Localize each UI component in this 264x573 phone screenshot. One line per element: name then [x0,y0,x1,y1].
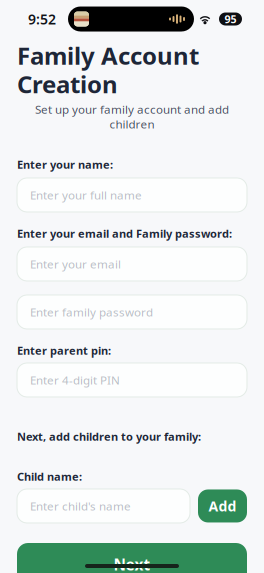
staticText: Enter your full name [30,187,142,203]
staticText: Set up your family account and add [35,101,229,117]
staticText: Family Account [17,39,199,72]
staticText: Enter 4-digit PIN [30,372,120,388]
staticText: Child name: [17,469,82,484]
staticText: Add [208,496,236,515]
staticText: Next, add children to your family: [17,429,201,444]
button[interactable]: Enter 4-digit PIN [17,363,247,397]
staticText: Enter your email and Family password: [17,226,232,241]
staticText: children [109,116,154,132]
button[interactable]: Next [17,543,247,573]
staticText: Enter your name: [17,157,113,172]
staticText: Next [113,554,150,573]
staticText: Enter family password [30,304,153,320]
staticText: Enter child's name [30,498,131,514]
staticText: Creation [17,68,118,100]
button[interactable]: Enter your email [17,247,247,281]
staticText: 95 [224,12,236,26]
staticText: Enter your email [30,256,121,272]
button[interactable]: Enter child's name [17,489,190,523]
button[interactable]: Enter family password [17,295,247,329]
staticText: 9:52 [28,9,56,29]
button[interactable]: Enter your full name [17,178,247,212]
staticText: Enter parent pin: [17,343,111,358]
button[interactable]: Add [198,489,247,522]
